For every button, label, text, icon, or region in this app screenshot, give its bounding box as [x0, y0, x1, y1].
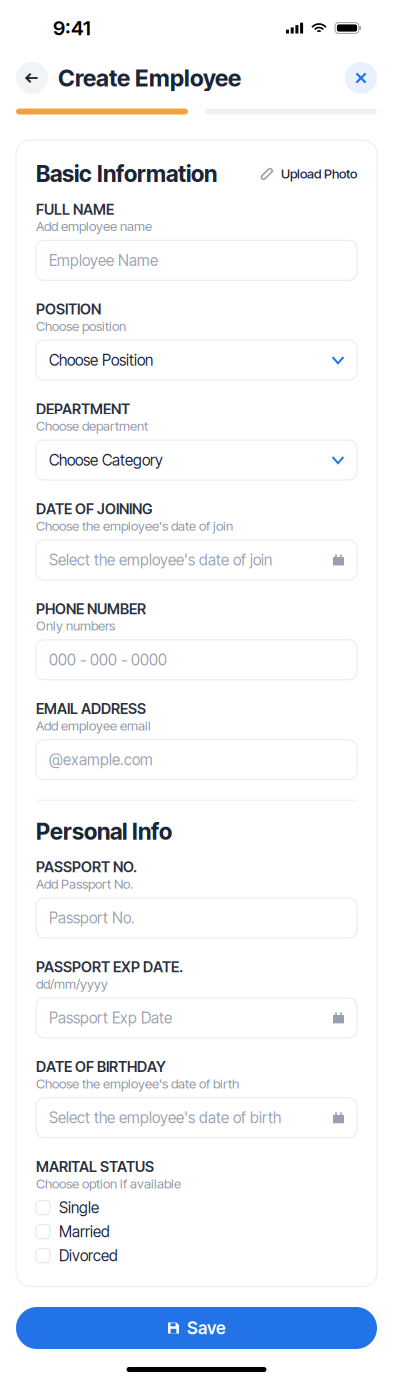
staticText: Add employee name: [36, 218, 152, 234]
button[interactable]: Choose Position: [36, 340, 357, 380]
staticText: Choose Position: [49, 351, 153, 369]
button[interactable]: Close: [345, 62, 377, 94]
staticText: Choose department: [36, 418, 148, 434]
button[interactable]: Select the employee's date of join: [36, 540, 357, 580]
button[interactable]: @example.com: [36, 740, 357, 780]
staticText: 000 - 000 - 0000: [49, 650, 167, 669]
button[interactable]: Select the employee's date of birth: [36, 1098, 357, 1138]
staticText: Upload Photo: [281, 166, 357, 182]
staticText: DEPARTMENT: [36, 400, 130, 418]
staticText: Employee Name: [49, 251, 158, 270]
button[interactable]: Passport No.: [36, 898, 357, 938]
staticText: Select the employee's date of join: [49, 551, 272, 569]
button[interactable]: 000 - 000 - 0000: [36, 640, 357, 680]
staticText: Single: [59, 1198, 99, 1217]
staticText: Passport Exp Date: [49, 1009, 172, 1027]
button[interactable]: Divorced: [36, 1244, 357, 1268]
staticText: Add Passport No.: [36, 876, 133, 892]
staticText: Add employee email: [36, 718, 151, 734]
button[interactable]: Married: [36, 1220, 357, 1244]
staticText: Choose Category: [49, 451, 163, 469]
staticText: Only numbers: [36, 618, 115, 634]
staticText: Select the employee's date of birth: [49, 1108, 281, 1127]
staticText: Divorced: [59, 1246, 118, 1265]
staticText: Personal Info: [36, 818, 172, 845]
staticText: Basic Information: [36, 160, 217, 187]
staticText: Choose position: [36, 318, 126, 334]
button[interactable]: Save: [16, 1307, 377, 1349]
staticText: PHONE NUMBER: [36, 600, 146, 618]
staticText: EMAIL ADDRESS: [36, 700, 146, 717]
staticText: 9:41: [53, 16, 91, 40]
staticText: FULL NAME: [36, 200, 114, 218]
staticText: Create Employee: [58, 64, 241, 92]
button[interactable]: Upload Photo: [259, 166, 357, 182]
staticText: MARITAL STATUS: [36, 1158, 154, 1175]
button[interactable]: Employee Name: [36, 240, 357, 280]
staticText: Married: [59, 1222, 110, 1241]
staticText: Choose the employee's date of join: [36, 518, 233, 534]
staticText: PASSPORT EXP DATE.: [36, 958, 183, 976]
staticText: Choose option if available: [36, 1175, 181, 1192]
staticText: PASSPORT NO.: [36, 858, 137, 876]
staticText: Choose the employee's date of birth: [36, 1076, 239, 1092]
staticText: POSITION: [36, 300, 101, 318]
staticText: DATE OF BIRTHDAY: [36, 1058, 166, 1076]
button[interactable]: Passport Exp Date: [36, 998, 357, 1038]
staticText: @example.com: [49, 750, 153, 769]
staticText: DATE OF JOINING: [36, 500, 153, 518]
staticText: Passport No.: [49, 909, 135, 927]
button[interactable]: Single: [36, 1196, 357, 1220]
staticText: Save: [187, 1317, 226, 1338]
button[interactable]: Choose Category: [36, 440, 357, 480]
staticText: dd/mm/yyyy: [36, 976, 108, 992]
button[interactable]: Back: [16, 62, 48, 94]
